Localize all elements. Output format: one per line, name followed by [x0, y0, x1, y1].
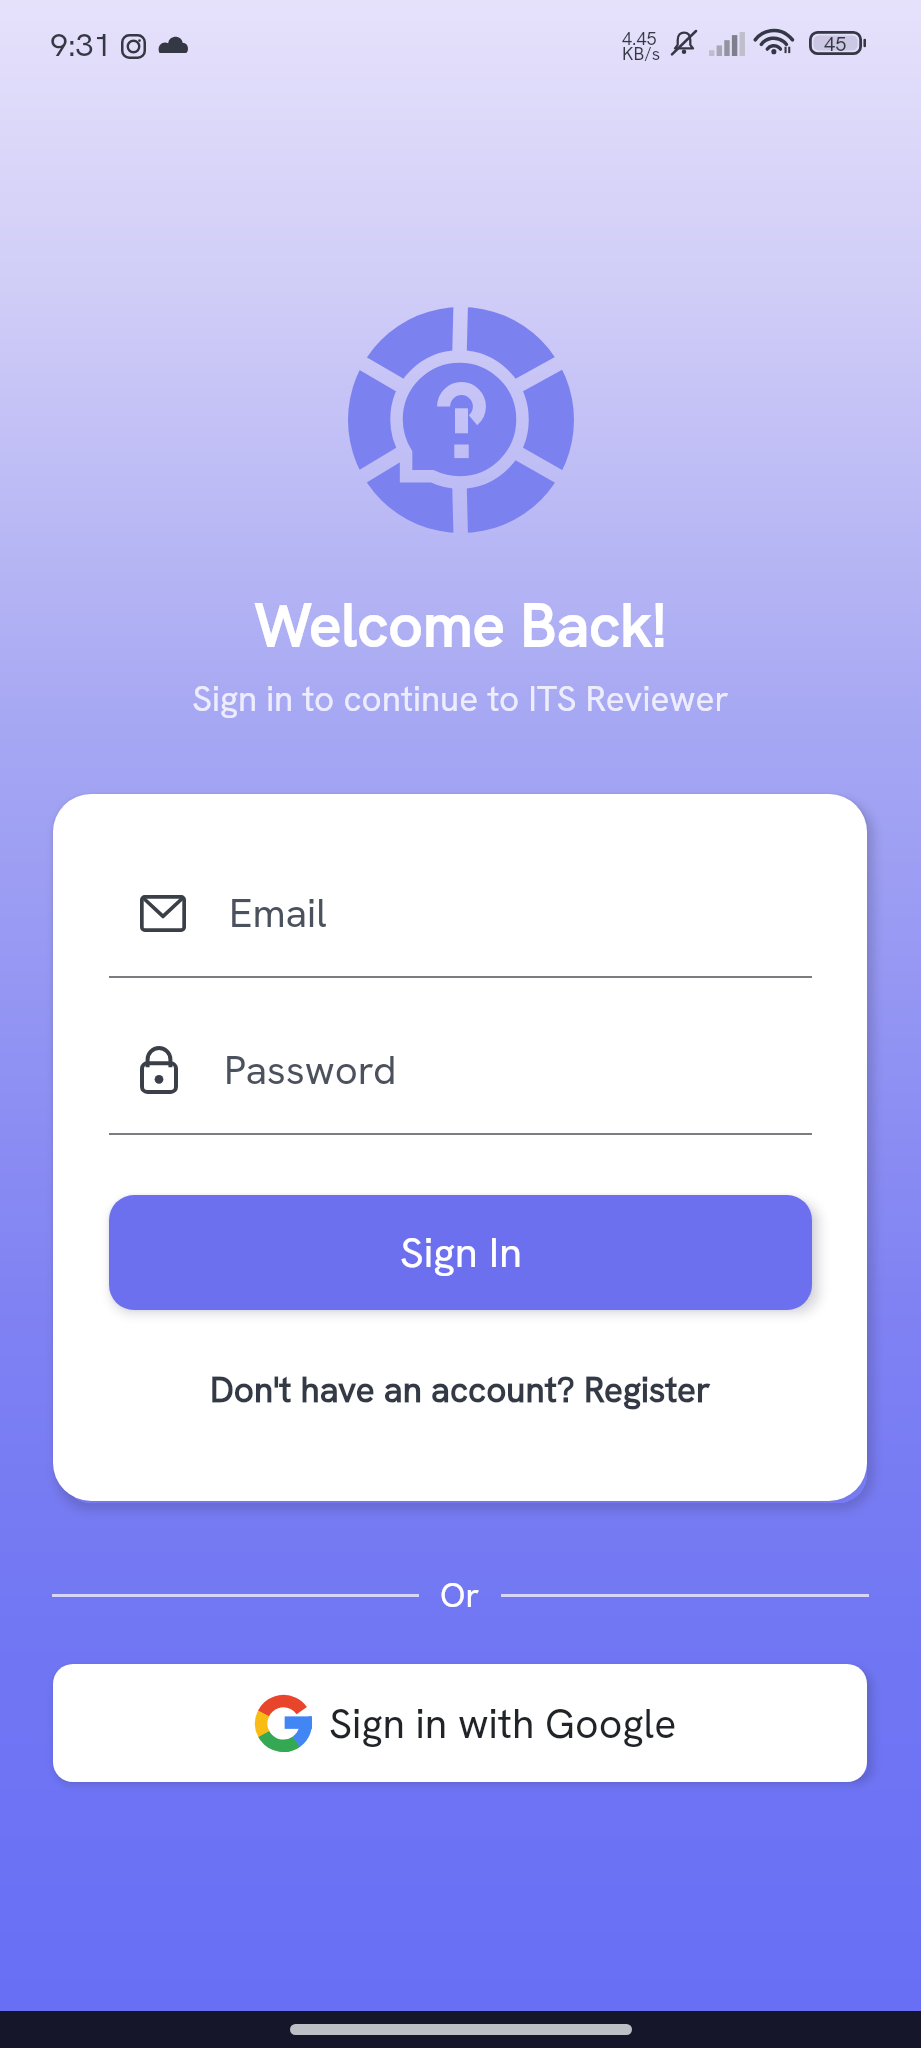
staticText: 45	[824, 31, 847, 55]
staticText: Sign in to continue to ITS Reviewer	[0, 676, 921, 722]
staticText: 4.45	[622, 27, 657, 50]
button[interactable]: Sign In	[109, 1195, 812, 1310]
staticText: Email	[229, 887, 327, 939]
button[interactable]: Sign in with Google	[53, 1664, 867, 1782]
staticText: KB/s	[622, 42, 661, 61]
staticText: Don't have an account? Register	[210, 1367, 711, 1413]
button[interactable]: Email	[109, 880, 812, 978]
staticText: Password	[224, 1044, 397, 1096]
staticText: Or	[440, 1573, 480, 1617]
staticText: 9:31	[50, 24, 112, 66]
staticText: Sign In	[400, 1225, 522, 1280]
staticText: Welcome Back!	[0, 586, 921, 664]
staticText: Sign in with Google	[329, 1697, 677, 1750]
button[interactable]: Don't have an account? Register	[53, 1360, 867, 1420]
button[interactable]: Password	[109, 1037, 812, 1135]
